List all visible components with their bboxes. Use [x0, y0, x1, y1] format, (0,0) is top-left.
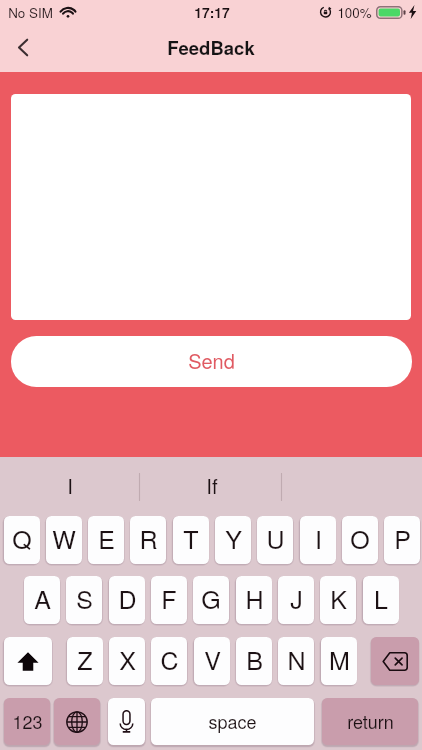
staticText: A [34, 580, 51, 616]
button[interactable]: P [384, 516, 420, 564]
staticText: P [394, 520, 411, 556]
staticText: L [374, 580, 388, 616]
staticText: S [76, 580, 93, 616]
staticText: M [329, 641, 350, 677]
button[interactable]: U [257, 516, 293, 564]
button[interactable]: J [278, 576, 314, 624]
button[interactable]: W [46, 516, 82, 564]
button[interactable]: I [300, 516, 336, 564]
button[interactable]: O [342, 516, 378, 564]
staticText: N [287, 641, 306, 677]
button[interactable]: M [321, 637, 357, 685]
staticText: return [347, 708, 394, 734]
staticText: 17:17 [194, 2, 230, 22]
button[interactable]: return [322, 698, 418, 745]
staticText: I [67, 470, 73, 499]
staticText: K [330, 580, 347, 616]
button[interactable]: B [236, 637, 272, 685]
button[interactable]: E [88, 516, 124, 564]
button[interactable]: K [320, 576, 356, 624]
button[interactable]: A [24, 576, 60, 624]
staticText: space [208, 708, 257, 734]
staticText: C [160, 641, 179, 677]
staticText: B [246, 641, 263, 677]
button[interactable]: Send [11, 336, 412, 387]
button[interactable]: Q [4, 516, 40, 564]
staticText: I [315, 520, 322, 556]
staticText: H [245, 580, 264, 616]
button[interactable]: Back [1, 25, 45, 69]
button[interactable]: Y [215, 516, 251, 564]
staticText: T [183, 520, 199, 556]
button[interactable]: If [141, 458, 282, 508]
staticText: F [161, 580, 177, 616]
button[interactable]: X [109, 637, 145, 685]
button[interactable]: H [236, 576, 272, 624]
button[interactable]: C [151, 637, 187, 685]
button[interactable]: Switch keyboard language [54, 698, 100, 745]
staticText: X [119, 641, 136, 677]
staticText: G [201, 580, 221, 616]
staticText: Z [77, 641, 93, 677]
staticText: U [266, 520, 285, 556]
staticText: W [52, 520, 76, 556]
button[interactable]: V [194, 637, 230, 685]
button[interactable]: R [130, 516, 166, 564]
staticText: Q [12, 520, 32, 556]
staticText: D [118, 580, 137, 616]
button[interactable]: 123 [4, 698, 50, 745]
button[interactable]: Backspace [371, 637, 419, 685]
staticText: O [350, 520, 370, 556]
button[interactable]: Shift [4, 637, 52, 685]
staticText: 100% [337, 3, 372, 22]
staticText: R [139, 520, 158, 556]
staticText: FeedBack [167, 34, 255, 60]
staticText: Y [225, 520, 242, 556]
button[interactable]: L [363, 576, 399, 624]
button[interactable]: I [0, 458, 140, 508]
button[interactable]: space [151, 698, 314, 745]
staticText: If [206, 470, 218, 499]
staticText: Send [188, 346, 235, 375]
button[interactable]: D [109, 576, 145, 624]
button[interactable]: S [66, 576, 102, 624]
button[interactable]: N [278, 637, 314, 685]
button[interactable]: T [173, 516, 209, 564]
staticText: E [98, 520, 115, 556]
button[interactable]: Dictate [108, 698, 145, 745]
button[interactable]: Z [67, 637, 103, 685]
staticText: 123 [12, 708, 43, 734]
button[interactable]: G [193, 576, 229, 624]
button[interactable]: F [151, 576, 187, 624]
staticText: J [290, 580, 303, 616]
staticText: V [204, 641, 221, 677]
staticText: No SIM [8, 3, 53, 22]
